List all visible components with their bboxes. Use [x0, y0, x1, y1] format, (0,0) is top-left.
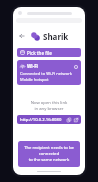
button[interactable]: Pick the file: [17, 48, 81, 57]
button[interactable]: Wi-Fi: [17, 60, 81, 85]
staticText: Wi-Fi: [27, 63, 38, 69]
button[interactable]: http://10.0.2.16:8080: [17, 115, 81, 124]
staticText: Connected to Wi-Fi network: [20, 71, 72, 76]
button[interactable]: Settings: [73, 64, 78, 69]
staticText: Mobile hotspot: [20, 77, 49, 82]
button[interactable]: The recipient needs to be connected to t…: [18, 141, 80, 167]
staticText: Sharik: [43, 31, 69, 42]
staticText: http://10.0.2.16:8080: [20, 117, 62, 123]
staticText: Pick the file: [27, 50, 52, 56]
button[interactable]: Share link: [73, 117, 78, 122]
staticText: The recipient needs to be connected to t…: [21, 145, 77, 163]
button[interactable]: Back: [16, 30, 28, 42]
button[interactable]: Copy link: [66, 117, 71, 122]
staticText: Now open this link in any browser: [13, 100, 85, 112]
